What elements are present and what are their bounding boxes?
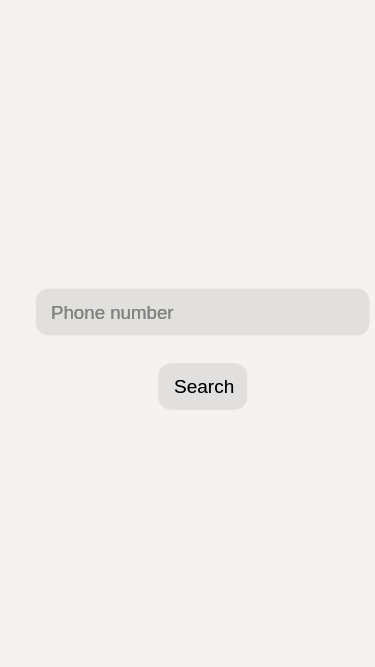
staticText: Search [174,376,235,397]
staticText: Search [174,376,235,397]
button[interactable]: Phone number input field [36,288,370,336]
button[interactable]: Search [158,363,248,410]
staticText: Phone number [51,302,174,323]
staticText: Phone number [51,302,174,323]
